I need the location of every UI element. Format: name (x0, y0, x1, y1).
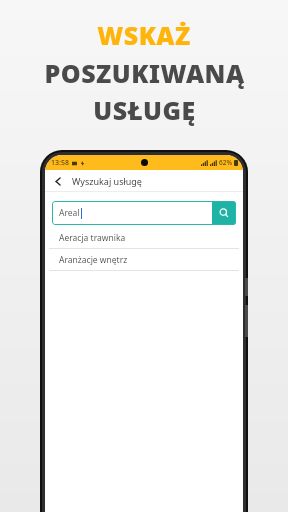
staticText: Aeracja trawnika (59, 232, 126, 244)
staticText: WSKAŻ (97, 18, 191, 52)
staticText: Wyszukaj usługę (72, 175, 142, 187)
staticText: USŁUGĘ (93, 93, 196, 127)
staticText: 62% (219, 158, 232, 167)
staticText: POSZUKIWANĄ (44, 56, 245, 90)
button[interactable]: Areal (52, 201, 212, 225)
staticText: Aranżacje wnętrz (59, 254, 128, 266)
staticText: 13:58 (51, 158, 69, 168)
button[interactable]: Szukaj (212, 201, 236, 225)
button[interactable]: Wstecz (50, 173, 66, 189)
staticText: Areal (59, 207, 80, 219)
button[interactable]: Aeracja trawnika (49, 227, 239, 248)
button[interactable]: Aranżacje wnętrz (49, 249, 239, 270)
